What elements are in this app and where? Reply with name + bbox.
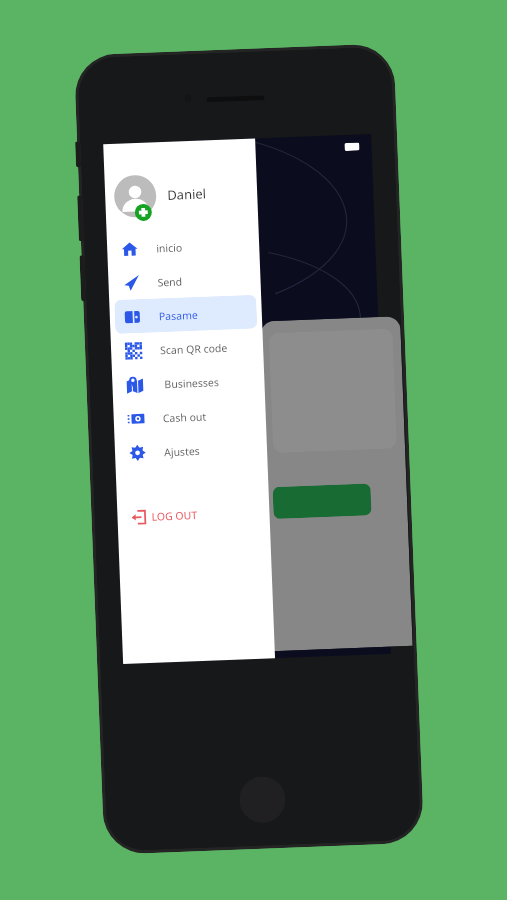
button[interactable]: Send	[113, 261, 256, 300]
button[interactable]: Pasame	[114, 295, 257, 334]
staticText: Businesses	[164, 375, 220, 391]
button[interactable]	[272, 483, 372, 519]
staticText: Scan QR code	[160, 341, 228, 357]
button[interactable]: Cash out	[118, 396, 261, 436]
staticText: LOG OUT	[151, 508, 198, 524]
staticText: Ajustes	[164, 444, 200, 459]
button[interactable]: Scan QR code	[115, 329, 259, 368]
staticText: inicio	[156, 240, 183, 255]
staticText: Pasame	[159, 308, 198, 323]
button[interactable]: Daniel	[104, 162, 258, 226]
staticText: Send	[157, 274, 183, 289]
staticText: Daniel	[167, 184, 206, 204]
button[interactable]: Ajustes	[119, 430, 263, 470]
button[interactable]: LOG OUT	[117, 498, 270, 532]
button[interactable]: Businesses	[117, 363, 260, 402]
button[interactable]: inicio	[112, 227, 255, 266]
staticText: Cash out	[162, 410, 207, 425]
